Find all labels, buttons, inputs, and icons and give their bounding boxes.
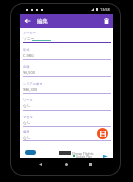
button[interactable]: Back	[35, 159, 46, 170]
button[interactable]: 備考	[23, 130, 111, 140]
button[interactable]: マモル	[23, 115, 111, 125]
button[interactable]: Delete	[99, 14, 113, 28]
staticText: マモル	[23, 115, 33, 119]
staticText: なし	[23, 103, 31, 108]
button[interactable]: 年式	[23, 48, 111, 58]
button[interactable]: Back	[20, 14, 35, 28]
staticText: C-98G	[23, 53, 34, 58]
staticText: シリアル番号	[23, 82, 43, 86]
staticText: 986,300	[23, 87, 38, 92]
staticText: ソニー	[23, 36, 35, 41]
staticText: メーカー	[23, 31, 36, 35]
staticText: なし	[23, 135, 31, 140]
staticText: 13:58	[100, 7, 110, 12]
staticText: 年式	[23, 48, 30, 52]
staticText: Cheap Flights	[72, 151, 94, 156]
button[interactable]: Cheap Flights	[20, 142, 113, 158]
staticText: 96,500	[23, 70, 35, 75]
staticText: 編集	[37, 18, 48, 25]
button[interactable]: Home	[61, 159, 72, 170]
button[interactable]: リース	[23, 98, 111, 108]
button[interactable]: シリアル番号	[23, 82, 111, 92]
staticText: 備考	[23, 130, 30, 134]
button[interactable]: メーカー	[23, 31, 111, 41]
staticText: リース	[23, 98, 33, 102]
staticText: なし	[23, 120, 31, 125]
staticText: 定価	[23, 65, 30, 69]
button[interactable]: 定価	[23, 65, 111, 75]
staticText: Google Play	[76, 155, 92, 159]
button[interactable]: Save	[97, 128, 108, 139]
button[interactable]: Recents	[85, 159, 96, 170]
